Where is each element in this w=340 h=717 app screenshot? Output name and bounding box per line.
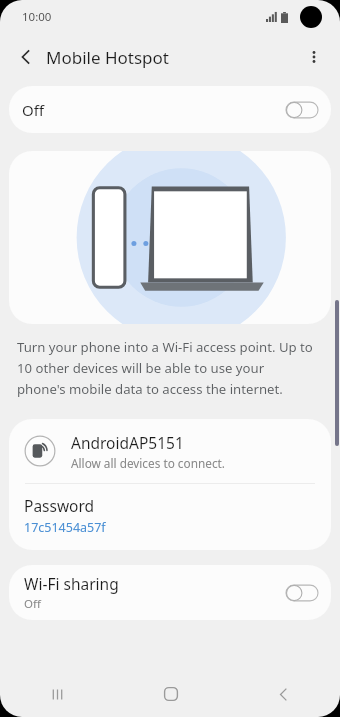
staticText: Wi-Fi sharing	[24, 573, 119, 594]
button[interactable]: AndroidAP5151	[9, 419, 331, 483]
button[interactable]: Password	[9, 484, 331, 550]
button[interactable]: Back	[8, 39, 44, 75]
staticText: Turn your phone into a Wi-Fi access poin…	[17, 338, 314, 398]
staticText: Allow all devices to connect.	[71, 455, 225, 471]
staticText: Mobile Hotspot	[46, 46, 169, 69]
staticText: 17c51454a57f	[24, 519, 106, 536]
staticText: Password	[24, 495, 95, 516]
button[interactable]: Recents	[0, 671, 114, 717]
staticText: Off	[22, 100, 45, 120]
button[interactable]: Home	[114, 671, 227, 717]
button[interactable]: Back	[227, 671, 340, 717]
staticText: AndroidAP5151	[71, 432, 184, 453]
button[interactable]: Wi-Fi sharing	[9, 565, 331, 620]
button[interactable]: Off	[9, 86, 331, 133]
staticText: Off	[24, 596, 41, 612]
button[interactable]: More options	[296, 39, 332, 75]
staticText: 10:00	[22, 9, 52, 25]
